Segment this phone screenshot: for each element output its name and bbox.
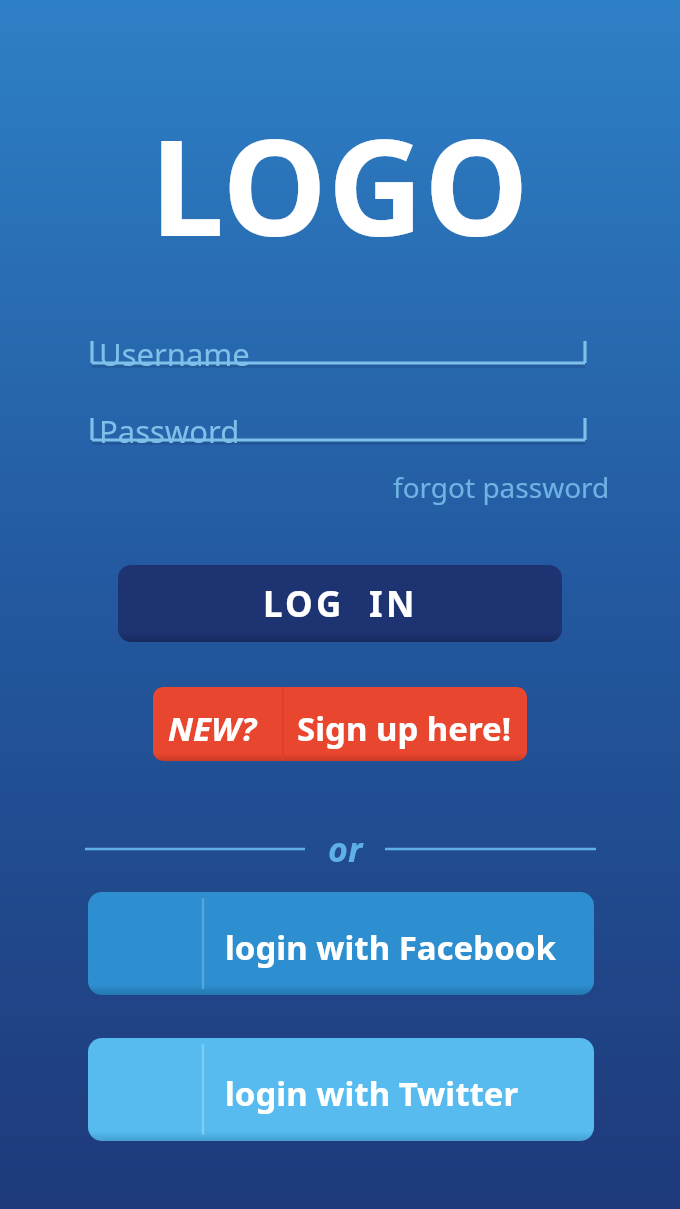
button[interactable]: LOG IN (118, 565, 562, 642)
button[interactable]: login with Twitter (88, 1038, 594, 1141)
staticText: Username (99, 333, 250, 375)
staticText: Sign up here! (297, 706, 512, 751)
staticText: login with Twitter (225, 1071, 519, 1116)
staticText: Password (99, 410, 240, 452)
staticText: forgot password (393, 468, 610, 506)
staticText: LOG IN (263, 580, 418, 628)
button[interactable]: login with Facebook (88, 892, 594, 995)
button[interactable]: forgot password (350, 466, 610, 508)
staticText: LOGO (0, 95, 680, 245)
staticText: NEW? (168, 706, 257, 751)
button[interactable]: Password field (92, 402, 585, 444)
button[interactable]: Username field (92, 325, 585, 367)
staticText: login with Facebook (225, 925, 556, 970)
staticText: or (328, 826, 363, 872)
button[interactable]: NEW? (153, 687, 527, 761)
